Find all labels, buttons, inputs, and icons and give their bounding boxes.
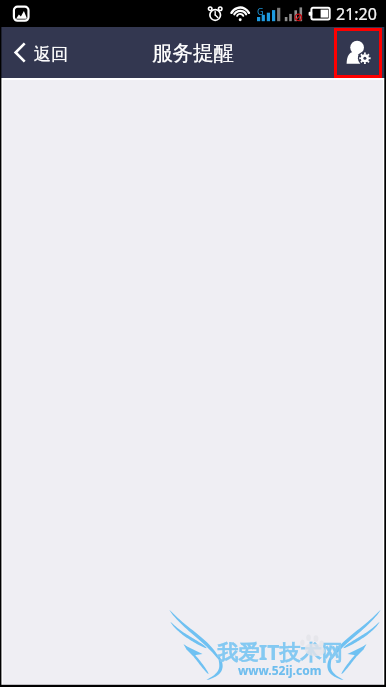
staticText: 服务提醒 <box>152 40 234 66</box>
button[interactable]: Account settings <box>334 28 382 78</box>
staticText: www.52ij.com <box>238 662 322 678</box>
staticText: G <box>257 5 264 17</box>
staticText: 返回 <box>34 44 68 65</box>
staticText: 我爱IT技术网 <box>217 638 343 667</box>
staticText: 21:20 <box>336 3 377 25</box>
button[interactable]: 返回 <box>0 27 82 78</box>
